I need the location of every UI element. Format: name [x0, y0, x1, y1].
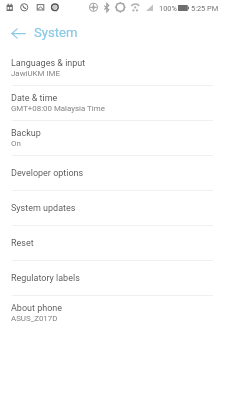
button[interactable]: Developer options: [0, 156, 225, 190]
button[interactable]: About phone: [0, 296, 225, 330]
staticText: System: [34, 25, 78, 40]
staticText: Date & time: [11, 93, 58, 104]
button[interactable]: Regulatory labels: [0, 261, 225, 295]
staticText: Reset: [11, 238, 34, 249]
staticText: 100%: [159, 4, 177, 13]
staticText: 5:25 PM: [191, 4, 219, 13]
staticText: About phone: [11, 303, 63, 314]
button[interactable]: Backup: [0, 121, 225, 155]
staticText: Backup: [11, 128, 41, 139]
staticText: Regulatory labels: [11, 273, 80, 284]
staticText: Developer options: [11, 168, 84, 179]
staticText: On: [11, 139, 21, 148]
button[interactable]: Reset: [0, 226, 225, 260]
button[interactable]: Languages & input: [0, 51, 225, 85]
staticText: GMT+08:00 Malaysia Time: [11, 104, 105, 113]
staticText: System updates: [11, 203, 76, 214]
button[interactable]: Date & time: [0, 86, 225, 120]
staticText: ASUS_Z017D: [11, 314, 58, 323]
button[interactable]: Back: [0, 16, 33, 51]
staticText: JawiUKM IME: [11, 69, 60, 78]
button[interactable]: System updates: [0, 191, 225, 225]
staticText: Languages & input: [11, 58, 86, 69]
